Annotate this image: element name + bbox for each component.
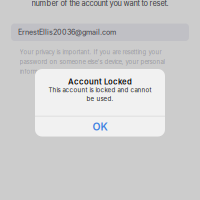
button[interactable]: ErnestEllis20036@gmail.com [11,23,189,41]
staticText: OK [92,120,107,133]
staticText: number of the account you want to reset. [31,0,168,8]
staticText: be used. [86,95,113,102]
staticText: information will not be stored on that d… [19,68,146,75]
staticText: Your privacy is important. If you are re… [19,48,161,56]
staticText: This account is locked and cannot [48,86,151,94]
staticText: password on someone else's device, your … [19,58,164,65]
button[interactable]: OK [35,117,165,136]
staticText: ErnestEllis20036@gmail.com [18,28,116,37]
staticText: Account Locked [68,77,132,86]
